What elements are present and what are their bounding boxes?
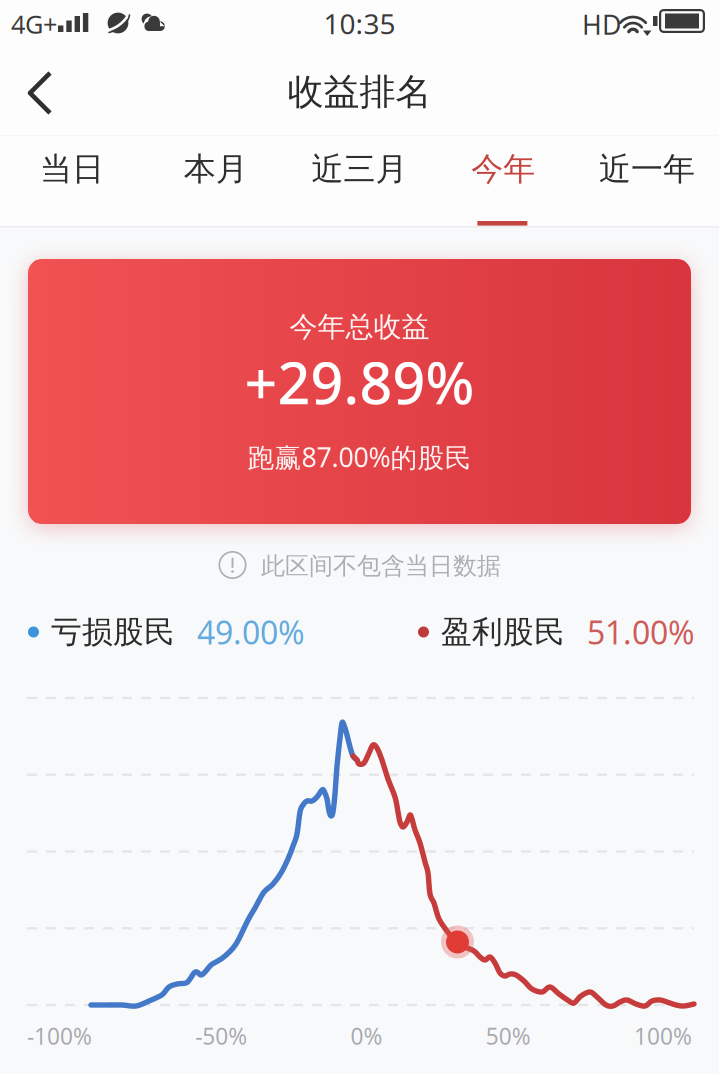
staticText: 49.00% bbox=[197, 611, 305, 653]
button[interactable]: 近一年 bbox=[575, 136, 719, 226]
staticText: 51.00% bbox=[587, 611, 695, 653]
button[interactable]: 近三月 bbox=[288, 136, 431, 226]
staticText: 4G+ bbox=[11, 7, 57, 41]
staticText: -50% bbox=[195, 1021, 247, 1051]
staticText: 当日 bbox=[40, 149, 104, 189]
staticText: +29.89% bbox=[244, 344, 474, 420]
staticText: 跑赢87.00%的股民 bbox=[247, 439, 471, 475]
staticText: 此区间不包含当日数据 bbox=[261, 551, 501, 581]
staticText: HD bbox=[582, 7, 621, 42]
staticText: 100% bbox=[634, 1021, 692, 1051]
staticText: 近一年 bbox=[599, 149, 695, 189]
button[interactable]: 当日 bbox=[0, 136, 144, 226]
staticText: 10:35 bbox=[323, 5, 395, 42]
staticText: 亏损股民 bbox=[51, 613, 175, 651]
staticText: 今年 bbox=[471, 149, 535, 189]
staticText: -100% bbox=[27, 1021, 92, 1051]
staticText: 50% bbox=[486, 1021, 531, 1051]
button[interactable]: 今年 bbox=[431, 136, 575, 226]
button[interactable]: Back bbox=[8, 48, 88, 136]
staticText: 收益排名 bbox=[287, 70, 431, 114]
staticText: 本月 bbox=[184, 149, 248, 189]
staticText: 近三月 bbox=[311, 149, 407, 189]
staticText: 0% bbox=[350, 1021, 382, 1051]
button[interactable]: 本月 bbox=[144, 136, 288, 226]
staticText: 盈利股民 bbox=[441, 613, 565, 651]
staticText: 今年总收益 bbox=[289, 310, 429, 344]
